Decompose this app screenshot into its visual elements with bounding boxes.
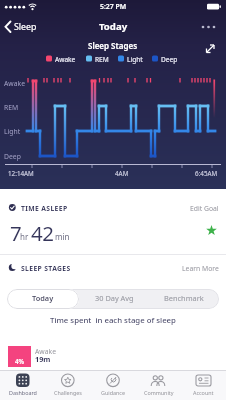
button[interactable]: Benchmark xyxy=(149,293,219,303)
staticText: Deep xyxy=(4,152,21,161)
staticText: 12:14AM xyxy=(8,169,34,178)
staticText: Sleep xyxy=(14,21,37,33)
button[interactable] xyxy=(7,289,79,309)
staticText: 30 Day Avg xyxy=(95,293,134,303)
button[interactable]: 30 Day Avg xyxy=(79,293,149,303)
staticText: Awake xyxy=(55,55,76,64)
button[interactable] xyxy=(136,370,181,400)
staticText: REM xyxy=(4,103,19,112)
button[interactable] xyxy=(202,41,220,57)
staticText: Edit Goal xyxy=(190,204,219,213)
button[interactable]: Learn More xyxy=(150,264,219,273)
staticText: Time spent in each stage of sleep xyxy=(50,315,176,326)
staticText: TIME ASLEEP xyxy=(21,204,68,213)
staticText: Awake xyxy=(4,79,25,88)
button[interactable] xyxy=(90,370,135,400)
staticText: Guidance xyxy=(101,389,125,396)
staticText: Today xyxy=(99,20,128,33)
staticText: Deep xyxy=(161,55,178,64)
staticText: Benchmark xyxy=(164,293,204,303)
staticText: 7 xyxy=(10,219,22,247)
staticText: SLEEP STAGES xyxy=(21,264,71,273)
button[interactable] xyxy=(2,17,42,37)
staticText: 42 xyxy=(31,219,54,247)
staticText: REM xyxy=(95,55,109,64)
staticText: 5:27 PM xyxy=(100,2,127,11)
button[interactable] xyxy=(181,370,226,400)
staticText: hr xyxy=(20,231,29,242)
staticText: Community xyxy=(144,389,174,396)
staticText: Account xyxy=(193,389,214,396)
button[interactable]: Edit Goal xyxy=(150,204,219,213)
staticText: Dashboard xyxy=(9,389,37,396)
staticText: min xyxy=(55,231,70,242)
staticText: Light xyxy=(4,127,21,136)
button[interactable] xyxy=(0,370,45,400)
staticText: 6:45AM xyxy=(195,169,218,178)
staticText: 19m xyxy=(35,354,51,364)
staticText: Today xyxy=(32,293,54,303)
staticText: 4AM xyxy=(115,169,129,178)
button[interactable] xyxy=(45,370,90,400)
staticText: Awake xyxy=(35,347,56,356)
staticText: Sleep Stages xyxy=(88,40,138,51)
staticText: Learn More xyxy=(182,264,219,273)
staticText: Challenges xyxy=(54,389,82,396)
staticText: 4% xyxy=(15,357,25,366)
button[interactable] xyxy=(196,18,222,36)
staticText: Light xyxy=(127,55,143,64)
